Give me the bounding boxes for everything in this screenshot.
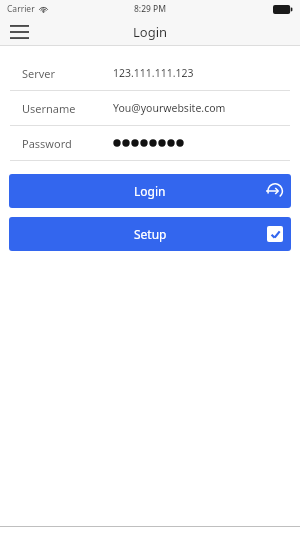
- button[interactable]: Username: [10, 91, 290, 125]
- button[interactable]: Server: [10, 56, 290, 90]
- staticText: Login: [134, 183, 166, 199]
- staticText: 8:29 PM: [134, 3, 167, 15]
- staticText: Setup: [134, 226, 167, 242]
- staticText: Username: [22, 101, 76, 116]
- staticText: You@yourwebsite.com: [113, 101, 226, 115]
- button[interactable]: Login: [9, 174, 291, 208]
- button[interactable]: Password: [10, 126, 290, 160]
- staticText: Server: [22, 66, 56, 81]
- staticText: 123.111.111.123: [113, 66, 194, 80]
- button[interactable]: Menu: [0, 18, 38, 46]
- staticText: Login: [133, 23, 168, 41]
- staticText: Password: [22, 136, 72, 151]
- staticText: Carrier: [7, 3, 35, 15]
- button[interactable]: Setup: [9, 217, 291, 251]
